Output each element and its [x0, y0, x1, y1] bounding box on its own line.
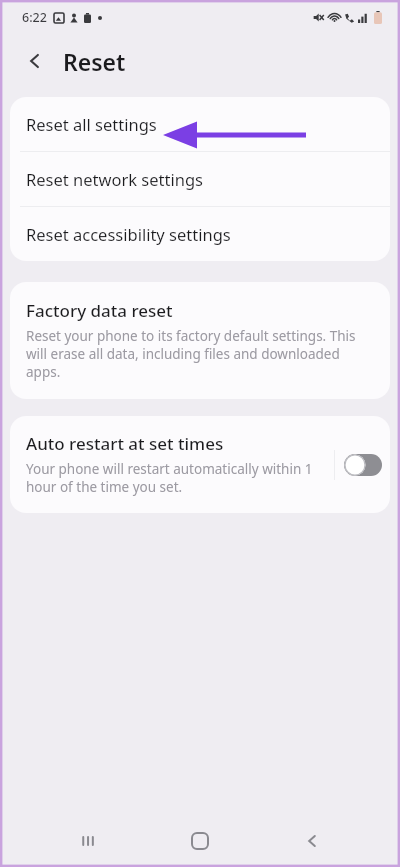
staticText: Reset network settings — [26, 168, 203, 190]
staticText: Your phone will restart automatically wi… — [26, 460, 326, 496]
button[interactable]: Auto restart at set times toggle — [335, 429, 390, 501]
button[interactable]: Reset all settings — [10, 97, 390, 151]
button[interactable]: Factory data reset — [10, 282, 390, 399]
button[interactable]: Reset network settings — [10, 152, 390, 206]
staticText: Auto restart at set times — [26, 432, 224, 455]
button[interactable]: Recents — [64, 817, 112, 865]
staticText: Reset your phone to its factory default … — [26, 327, 370, 381]
button[interactable]: Back — [20, 46, 50, 76]
staticText: Factory data reset — [26, 299, 173, 322]
button[interactable]: Reset accessibility settings — [10, 207, 390, 261]
button[interactable]: Home — [176, 817, 224, 865]
button[interactable]: Back — [288, 817, 336, 865]
staticText: Reset — [63, 46, 126, 77]
staticText: Reset all settings — [26, 113, 157, 135]
staticText: 6:22 — [22, 9, 47, 26]
staticText: Reset accessibility settings — [26, 223, 231, 245]
button[interactable]: Auto restart at set times — [10, 416, 334, 513]
